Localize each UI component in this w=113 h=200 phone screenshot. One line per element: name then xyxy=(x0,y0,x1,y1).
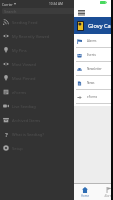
staticText: Alarms xyxy=(104,194,113,198)
button[interactable]: ? xyxy=(0,127,113,141)
button[interactable]: My Recently Viewed xyxy=(0,29,113,43)
staticText: Search xyxy=(4,9,17,14)
button[interactable]: Menu xyxy=(76,8,86,17)
button[interactable]: My Pins xyxy=(0,43,113,57)
staticText: Events xyxy=(87,53,96,57)
staticText: Carrier xyxy=(2,2,13,6)
staticText: My Recently Viewed xyxy=(12,34,50,39)
staticText: Setup xyxy=(12,146,23,151)
staticText: News xyxy=(87,81,95,85)
button[interactable]: Alarms xyxy=(74,34,111,48)
button[interactable]: Alarms xyxy=(100,185,113,200)
staticText: eForms xyxy=(87,95,98,99)
staticText: My Pins xyxy=(12,48,27,53)
button[interactable]: Live Seedtag xyxy=(0,99,113,113)
button[interactable]: eForms xyxy=(0,85,113,99)
staticText: Alarms xyxy=(87,39,97,43)
staticText: eForms xyxy=(12,90,27,95)
button[interactable]: Home xyxy=(76,185,94,200)
button[interactable]: Newsletter xyxy=(74,62,111,76)
button[interactable]: Most Viewed xyxy=(0,57,113,71)
staticText: ? xyxy=(5,131,8,137)
button[interactable]: Setup xyxy=(0,141,113,155)
staticText: Most Pinned xyxy=(12,76,36,81)
staticText: Most Viewed xyxy=(12,62,36,67)
staticText: What is Seedtag? xyxy=(12,132,44,137)
staticText: 10:34 AM xyxy=(49,2,63,6)
staticText: Seedtag Feed xyxy=(12,20,38,25)
button[interactable]: eForms xyxy=(74,90,111,104)
staticText: Newsletter xyxy=(87,67,102,71)
button[interactable]: Search xyxy=(2,8,111,14)
button[interactable]: Seedtag Feed xyxy=(0,15,113,29)
staticText: Live Seedtag xyxy=(12,104,36,109)
button[interactable]: News xyxy=(74,76,111,90)
button[interactable]: Events xyxy=(74,48,111,62)
staticText: Home xyxy=(81,194,89,198)
button[interactable]: Archived Items xyxy=(0,113,113,127)
staticText: Glovy Ca xyxy=(88,22,111,30)
staticText: Archived Items xyxy=(12,118,41,123)
button[interactable]: Most Pinned xyxy=(0,71,113,85)
